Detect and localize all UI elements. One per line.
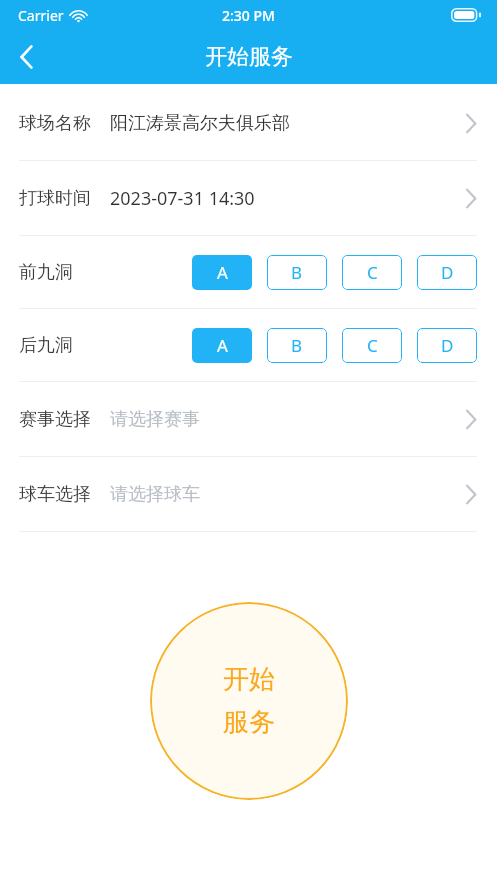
staticText: Carrier <box>18 6 64 25</box>
staticText: D <box>441 261 454 284</box>
staticText: B <box>291 261 303 284</box>
button[interactable]: 打球时间 <box>0 161 497 235</box>
button[interactable]: C <box>342 328 402 363</box>
button[interactable]: B <box>267 255 327 290</box>
staticText: 打球时间 <box>19 187 91 210</box>
staticText: 请选择赛事 <box>110 408 200 431</box>
staticText: 前九洞 <box>19 261 73 284</box>
button[interactable]: D <box>417 255 477 290</box>
button[interactable]: 球场名称 <box>0 86 497 160</box>
staticText: 阳江涛景高尔夫俱乐部 <box>110 112 290 135</box>
staticText: 请选择球车 <box>110 483 200 506</box>
staticText: C <box>367 261 378 284</box>
staticText: 后九洞 <box>19 334 73 357</box>
staticText: B <box>291 334 303 357</box>
button[interactable]: D <box>417 328 477 363</box>
staticText: A <box>217 261 228 284</box>
staticText: 开始 <box>223 663 275 696</box>
staticText: 服务 <box>223 706 275 739</box>
staticText: 球场名称 <box>19 112 91 135</box>
button[interactable]: Back <box>0 30 54 84</box>
staticText: C <box>367 334 378 357</box>
staticText: A <box>217 334 228 357</box>
button[interactable]: 开始 <box>150 602 348 800</box>
button[interactable]: 赛事选择 <box>0 382 497 456</box>
staticText: 球车选择 <box>19 483 91 506</box>
button[interactable]: B <box>267 328 327 363</box>
button[interactable]: A <box>192 328 252 363</box>
button[interactable]: C <box>342 255 402 290</box>
staticText: D <box>441 334 454 357</box>
button[interactable]: 球车选择 <box>0 457 497 531</box>
button[interactable]: A <box>192 255 252 290</box>
staticText: 赛事选择 <box>19 408 91 431</box>
staticText: 2:30 PM <box>222 6 275 25</box>
staticText: 开始服务 <box>205 43 293 71</box>
staticText: 2023-07-31 14:30 <box>110 186 255 211</box>
